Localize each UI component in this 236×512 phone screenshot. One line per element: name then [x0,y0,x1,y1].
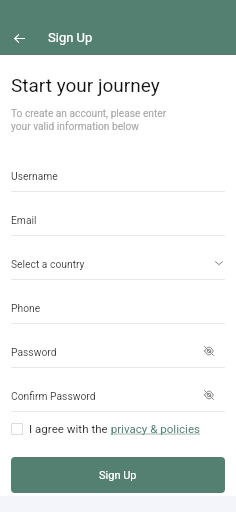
button[interactable]: Show password [199,385,219,405]
button[interactable]: Sign Up [11,457,225,493]
button[interactable]: Show password [199,341,219,361]
staticText: I agree with the privacy & policies [29,422,201,436]
button[interactable]: Back [7,26,31,50]
staticText: Phone [11,302,41,314]
staticText: Email [11,214,37,226]
staticText: Sign Up [48,30,93,45]
button[interactable]: Password [0,324,236,368]
staticText: Confirm Password [11,390,96,402]
staticText: Sign Up [99,469,137,482]
staticText: Username [11,170,58,182]
button[interactable]: Username [0,148,236,192]
button[interactable]: Open country list [209,253,229,273]
button[interactable]: Email [0,192,236,236]
staticText: Start your journey [11,74,160,96]
staticText: Password [11,346,57,358]
staticText: To create an account, please enter your … [11,108,167,132]
button[interactable]: Confirm Password [0,368,236,412]
button[interactable]: Phone [0,280,236,324]
staticText: Select a country [11,258,85,270]
button[interactable]: Select a country [0,236,236,280]
button[interactable]: I agree with the privacy & policies [11,418,225,440]
